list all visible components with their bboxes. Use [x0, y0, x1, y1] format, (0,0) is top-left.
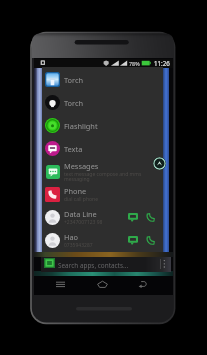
button[interactable]: Hao — [42, 229, 163, 252]
button[interactable]: Home — [97, 280, 108, 289]
button[interactable]: Send message — [128, 213, 138, 222]
button[interactable]: Texta — [42, 137, 163, 160]
staticText: Messages — [64, 161, 99, 171]
staticText: Data Line — [64, 209, 97, 219]
staticText: Search apps, contacts... — [58, 261, 129, 270]
button[interactable]: Torch — [42, 91, 163, 114]
button[interactable]: Messages — [42, 160, 163, 183]
button[interactable]: Phone — [42, 183, 163, 206]
button[interactable]: Data Line — [42, 206, 163, 229]
button[interactable]: Back — [138, 280, 148, 289]
staticText: +2347007123 98 — [64, 219, 103, 226]
button[interactable]: Flashlight — [42, 114, 163, 137]
staticText: Hao — [64, 232, 79, 242]
button[interactable]: Torch — [42, 68, 163, 91]
staticText: Flashlight — [64, 121, 98, 131]
staticText: Phone — [64, 186, 87, 196]
button[interactable]: Scroll to top — [153, 157, 166, 170]
button[interactable]: Call — [146, 213, 155, 222]
staticText: 0735943287 — [64, 242, 93, 249]
button[interactable]: Send message — [128, 236, 138, 245]
staticText: Torch — [64, 98, 84, 108]
button[interactable]: Call — [146, 236, 155, 245]
staticText: text message compose and mms messaging — [64, 171, 142, 183]
button[interactable]: Recent apps — [56, 281, 65, 289]
button[interactable]: Search apps, contacts... — [41, 257, 171, 272]
staticText: 78% — [129, 60, 140, 67]
staticText: dial call phone — [64, 196, 98, 203]
staticText: Torch — [64, 75, 84, 85]
button[interactable]: More options — [161, 259, 167, 269]
staticText: Texta — [64, 144, 83, 154]
staticText: 11:26 — [154, 59, 170, 67]
